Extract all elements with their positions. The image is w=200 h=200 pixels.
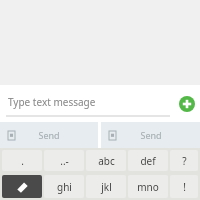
button[interactable]: mno: [128, 175, 168, 198]
button[interactable]: .: [2, 150, 42, 171]
staticText: def: [140, 154, 156, 168]
staticText: Send: [38, 129, 60, 141]
staticText: .: [21, 154, 24, 168]
staticText: mno: [137, 180, 159, 194]
button[interactable]: abc: [86, 150, 126, 171]
button[interactable]: Send: [0, 122, 98, 148]
button[interactable]: Delete: [2, 175, 42, 198]
button[interactable]: ..-: [44, 150, 84, 171]
button[interactable]: Add attachment: [174, 85, 200, 122]
staticText: ..-: [60, 154, 69, 168]
button[interactable]: def: [128, 150, 168, 171]
button[interactable]: !: [170, 175, 198, 198]
staticText: ghi: [57, 180, 72, 194]
staticText: abc: [98, 154, 115, 168]
button[interactable]: ghi: [44, 175, 84, 198]
button[interactable]: Type text message: [0, 85, 174, 122]
staticText: ?: [182, 154, 187, 168]
staticText: jkl: [101, 180, 112, 194]
button[interactable]: Send: [101, 122, 200, 148]
staticText: !: [183, 180, 186, 194]
staticText: Send: [140, 129, 162, 141]
button[interactable]: jkl: [86, 175, 126, 198]
staticText: Type text message: [8, 95, 96, 109]
button[interactable]: ?: [170, 150, 198, 171]
